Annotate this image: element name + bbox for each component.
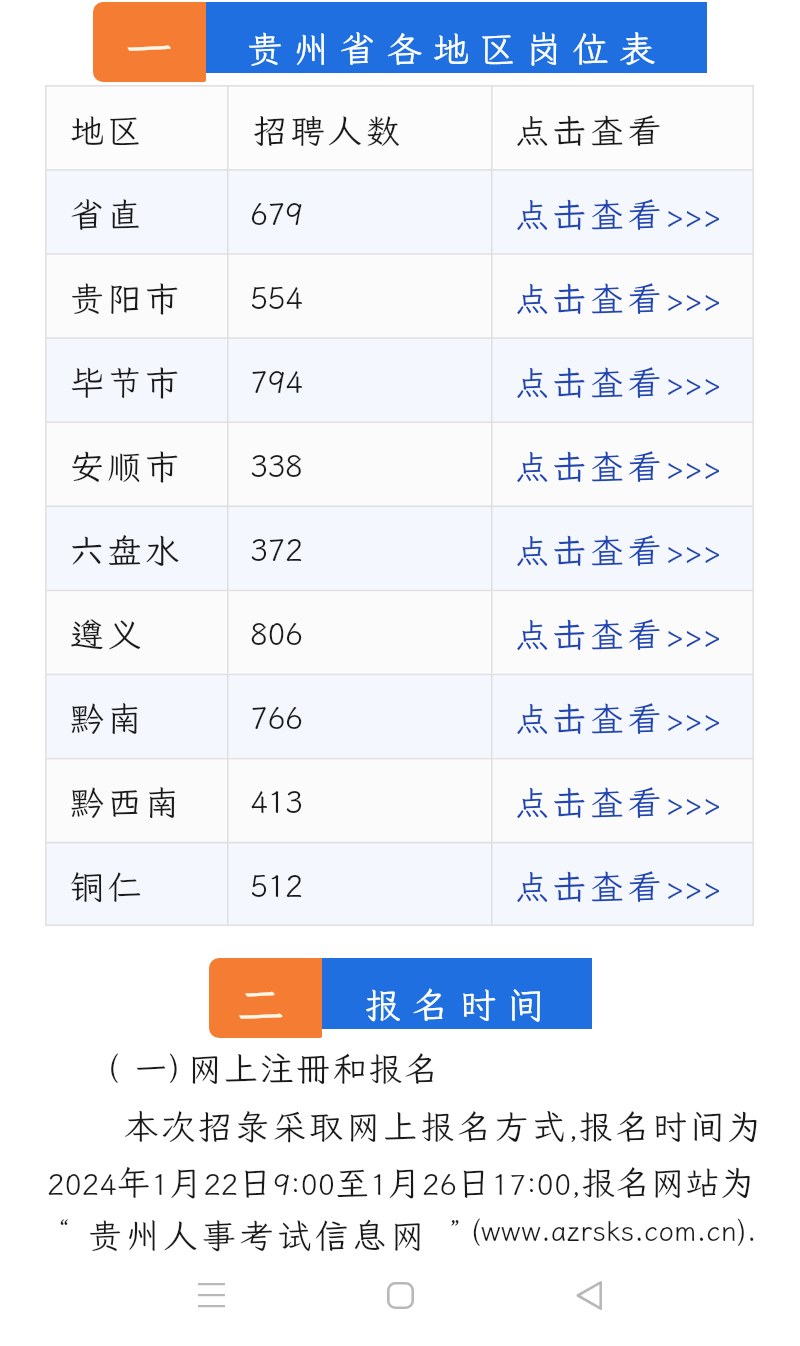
- staticText: 招聘人数: [253, 108, 403, 153]
- button[interactable]: 省直: [45, 169, 754, 253]
- staticText: 372: [250, 530, 303, 570]
- staticText: 铜仁: [70, 864, 145, 909]
- staticText: 本次招录采取网上报名方式,报名时间为: [124, 1104, 764, 1149]
- button[interactable]: 黔南: [45, 673, 754, 757]
- button[interactable]: 安顺市: [45, 421, 754, 505]
- staticText: 338: [250, 446, 303, 486]
- button[interactable]: Recent apps: [181, 1265, 241, 1325]
- button[interactable]: 报名时间: [322, 958, 592, 1029]
- button[interactable]: 地区: [45, 85, 754, 169]
- staticText: 网上注册和报名: [188, 1046, 441, 1091]
- staticText: 点击查看>>>: [515, 780, 721, 825]
- staticText: (www.azrsks.com.cn).: [471, 1213, 757, 1249]
- button[interactable]: 毕节市: [45, 337, 754, 421]
- staticText: 点击查看>>>: [515, 444, 721, 489]
- staticText: 2024年1月22日9:00至1月26日17:00,报名网站为: [47, 1160, 755, 1205]
- staticText: 贵阳市: [70, 276, 183, 321]
- staticText: ”: [450, 1213, 461, 1251]
- staticText: 安顺市: [70, 444, 183, 489]
- button[interactable]: 黔西南: [45, 757, 754, 841]
- button[interactable]: Home: [370, 1265, 430, 1325]
- staticText: 766: [250, 698, 303, 738]
- staticText: 点击查看>>>: [515, 612, 721, 657]
- staticText: 二: [237, 972, 286, 1035]
- staticText: 贵州人事考试信息网: [88, 1213, 429, 1258]
- staticText: 679: [250, 194, 303, 234]
- button[interactable]: 遵义: [45, 589, 754, 673]
- staticText: 点击查看>>>: [515, 360, 721, 405]
- button[interactable]: 六盘水: [45, 505, 754, 589]
- staticText: (: [108, 1046, 119, 1087]
- staticText: ): [169, 1046, 180, 1087]
- staticText: 794: [250, 362, 303, 402]
- staticText: 黔西南: [70, 780, 183, 825]
- staticText: 六盘水: [70, 528, 183, 573]
- button[interactable]: 贵阳市: [45, 253, 754, 337]
- staticText: 地区: [70, 108, 145, 153]
- button[interactable]: Back: [559, 1265, 619, 1325]
- staticText: 遵义: [70, 612, 145, 657]
- staticText: 点击查看>>>: [515, 192, 721, 237]
- staticText: 点击查看>>>: [515, 528, 721, 573]
- staticText: 512: [250, 866, 303, 906]
- staticText: “: [59, 1213, 70, 1251]
- staticText: 点击查看>>>: [515, 276, 721, 321]
- staticText: 一: [135, 1047, 168, 1089]
- staticText: 一: [125, 16, 174, 79]
- staticText: 点击查看>>>: [515, 696, 721, 741]
- staticText: 报名时间: [365, 981, 556, 1028]
- staticText: 点击查看: [515, 108, 665, 153]
- staticText: 省直: [70, 192, 145, 237]
- staticText: 毕节市: [70, 360, 183, 405]
- staticText: 点击查看>>>: [515, 864, 721, 909]
- staticText: 贵州省各地区岗位表: [247, 25, 666, 72]
- staticText: 806: [250, 614, 303, 654]
- button[interactable]: 二: [209, 958, 322, 1038]
- staticText: 413: [250, 782, 303, 822]
- staticText: 554: [250, 278, 303, 318]
- button[interactable]: 铜仁: [45, 841, 754, 925]
- staticText: 黔南: [70, 696, 145, 741]
- button[interactable]: 贵州省各地区岗位表: [206, 2, 707, 73]
- button[interactable]: 一: [93, 2, 206, 82]
